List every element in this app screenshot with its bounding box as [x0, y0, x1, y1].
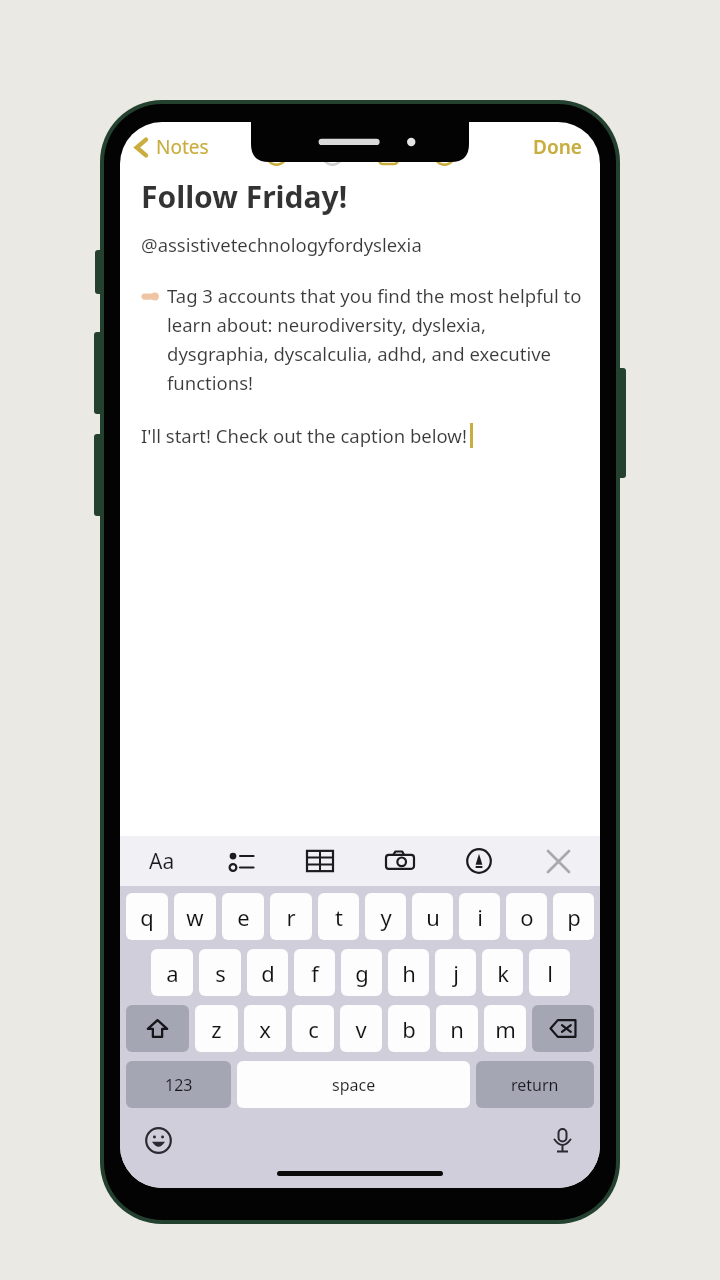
staticText: b — [402, 1014, 416, 1044]
button[interactable]: r — [270, 893, 312, 940]
button[interactable]: c — [292, 1005, 334, 1052]
staticText: Aa — [149, 847, 175, 876]
staticText: s — [215, 958, 226, 988]
button[interactable]: Backspace — [532, 1005, 594, 1052]
staticText: space — [332, 1074, 376, 1096]
staticText: Notes — [156, 134, 209, 160]
staticText: x — [259, 1014, 271, 1044]
button[interactable]: o — [506, 893, 547, 940]
button[interactable]: h — [388, 949, 429, 996]
button[interactable]: 123 — [126, 1061, 231, 1108]
staticText: f — [311, 958, 319, 988]
button[interactable]: m — [484, 1005, 526, 1052]
button[interactable]: l — [529, 949, 570, 996]
staticText: return — [511, 1074, 559, 1096]
staticText: w — [186, 902, 204, 932]
staticText: j — [453, 958, 459, 988]
button[interactable]: k — [482, 949, 523, 996]
staticText: Follow Friday! — [141, 176, 348, 217]
button[interactable]: Notes — [128, 130, 215, 164]
button[interactable]: return — [476, 1061, 594, 1108]
staticText: Tag 3 accounts that you find the most he… — [167, 283, 584, 395]
button[interactable]: y — [365, 893, 406, 940]
button[interactable]: p — [553, 893, 594, 940]
button[interactable]: Table — [300, 841, 340, 881]
button[interactable]: x — [244, 1005, 286, 1052]
staticText: i — [477, 902, 483, 932]
staticText: u — [426, 902, 440, 932]
button[interactable]: e — [222, 893, 264, 940]
button[interactable]: q — [126, 893, 168, 940]
staticText: m — [495, 1014, 516, 1044]
button[interactable]: v — [340, 1005, 382, 1052]
staticText: Done — [533, 134, 582, 160]
staticText: k — [497, 958, 509, 988]
staticText: h — [402, 958, 416, 988]
button[interactable]: Close keyboard — [538, 841, 578, 881]
button[interactable]: g — [341, 949, 382, 996]
staticText: z — [211, 1014, 222, 1044]
button[interactable]: Done — [527, 130, 588, 164]
staticText: a — [166, 958, 179, 988]
button[interactable]: Camera — [380, 841, 420, 881]
button[interactable]: Markup — [459, 841, 499, 881]
button[interactable]: u — [412, 893, 453, 940]
button[interactable]: i — [459, 893, 500, 940]
button[interactable]: More options — [430, 140, 458, 168]
button[interactable]: d — [247, 949, 288, 996]
staticText: d — [261, 958, 275, 988]
staticText: q — [140, 902, 154, 932]
staticText: 123 — [165, 1074, 193, 1096]
button[interactable]: a — [151, 949, 193, 996]
staticText: o — [520, 902, 534, 932]
button[interactable]: Compose — [262, 140, 290, 168]
button[interactable]: Dictation — [542, 1120, 582, 1160]
button[interactable]: b — [388, 1005, 430, 1052]
button[interactable]: Text format — [142, 841, 182, 881]
staticText: r — [286, 902, 296, 932]
button[interactable]: z — [195, 1005, 238, 1052]
staticText: e — [237, 902, 250, 932]
button[interactable]: f — [294, 949, 335, 996]
staticText: y — [380, 902, 392, 932]
staticText: g — [355, 958, 369, 988]
button[interactable]: Emoji — [138, 1120, 178, 1160]
button[interactable]: j — [435, 949, 476, 996]
staticText: @assistivetechnologyfordyslexia — [141, 232, 422, 257]
button[interactable]: Shift — [126, 1005, 189, 1052]
button[interactable]: Share — [318, 140, 346, 168]
button[interactable]: New note — [374, 140, 402, 168]
button[interactable]: Checklist — [221, 841, 261, 881]
button[interactable]: space — [237, 1061, 470, 1108]
staticText: l — [547, 958, 553, 988]
button[interactable]: w — [174, 893, 216, 940]
button[interactable]: t — [318, 893, 359, 940]
staticText: t — [335, 902, 343, 932]
staticText: n — [450, 1014, 464, 1044]
staticText: c — [308, 1014, 319, 1044]
staticText: p — [567, 902, 581, 932]
button[interactable]: n — [436, 1005, 478, 1052]
staticText: I'll start! Check out the caption below! — [141, 423, 467, 448]
button[interactable]: s — [199, 949, 241, 996]
staticText: v — [355, 1014, 367, 1044]
